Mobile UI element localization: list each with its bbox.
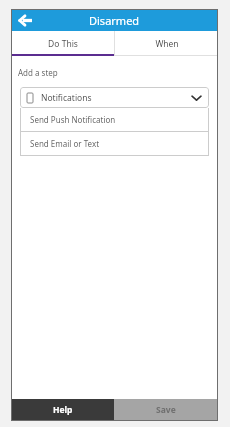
button[interactable]: Do This xyxy=(11,31,114,56)
staticText: Help xyxy=(53,404,73,416)
button[interactable]: When xyxy=(115,31,218,56)
staticText: Add a step xyxy=(18,67,58,78)
button[interactable]: Send Email or Text xyxy=(20,132,209,155)
button[interactable]: Back xyxy=(15,10,35,30)
button[interactable]: Help xyxy=(11,399,114,421)
staticText: Save xyxy=(156,404,176,416)
staticText: When xyxy=(155,38,179,50)
staticText: Send Push Notification xyxy=(30,114,116,125)
staticText: Do This xyxy=(48,38,78,50)
button[interactable]: Notifications xyxy=(20,87,209,108)
staticText: Disarmed xyxy=(89,13,140,28)
staticText: Notifications xyxy=(41,92,92,104)
button[interactable]: Send Push Notification xyxy=(20,108,209,131)
staticText: Send Email or Text xyxy=(30,138,100,149)
button[interactable]: Save xyxy=(114,399,218,421)
